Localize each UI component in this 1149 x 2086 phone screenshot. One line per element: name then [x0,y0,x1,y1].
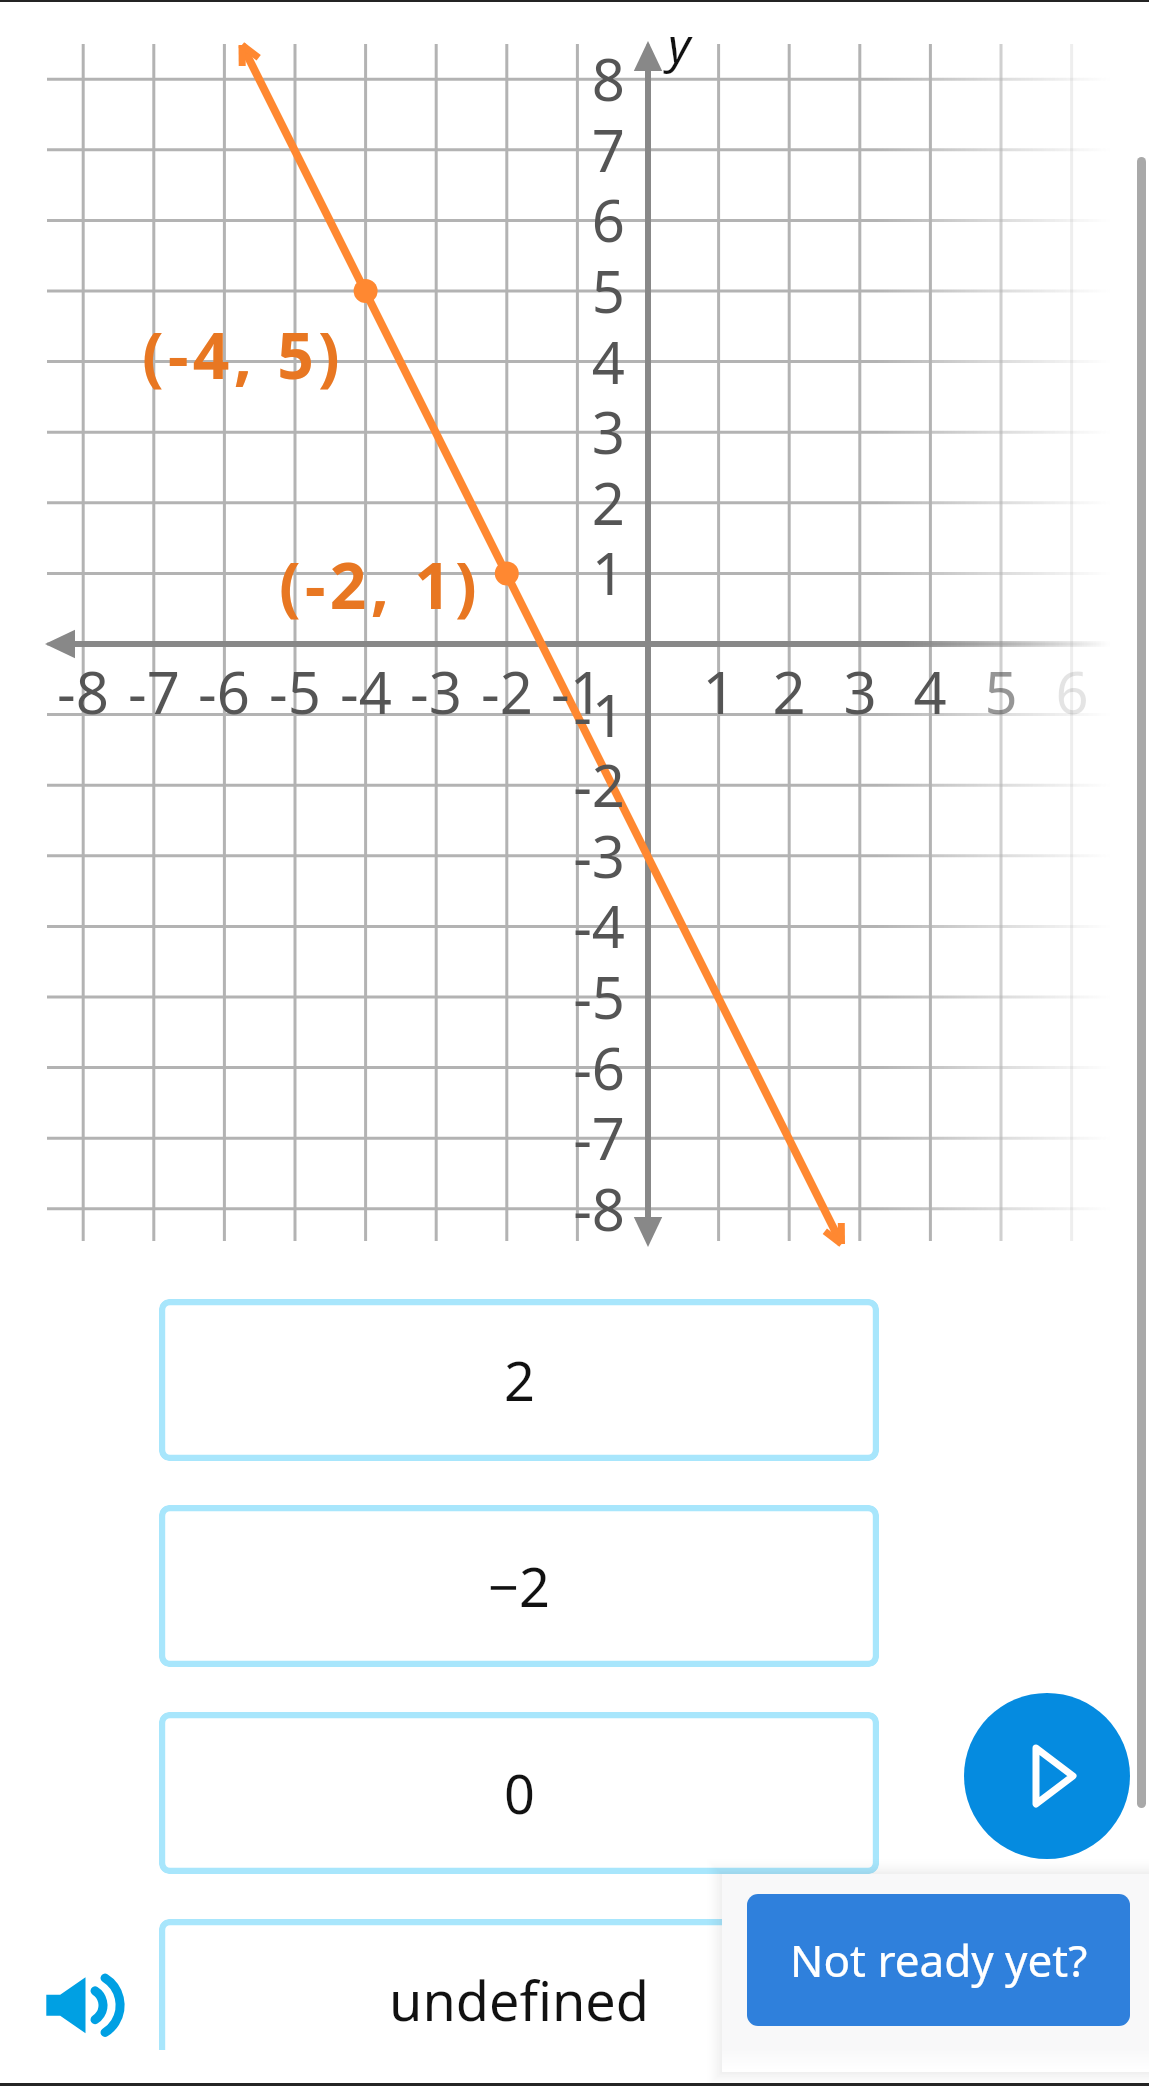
staticText: 2 [591,463,625,542]
staticText: -2 [481,652,533,731]
staticText: 1 [702,652,736,731]
staticText: 1 [591,533,625,612]
staticText: 5 [591,251,625,330]
staticText: 3 [843,652,877,731]
button[interactable]: Listen [30,1960,140,2052]
staticText: (-4, 5) [142,311,345,398]
staticText: -7 [573,1098,625,1177]
staticText: 6 [1055,652,1089,731]
staticText: undefined [389,1963,649,2037]
staticText: 0 [504,1756,535,1830]
button[interactable]: −2 [159,1505,879,1667]
staticText: 7 [591,110,625,189]
button[interactable]: 0 [159,1712,879,1874]
button[interactable]: 2 [159,1299,879,1461]
button[interactable]: Not ready yet? [747,1894,1130,2026]
staticText: 8 [591,39,625,118]
staticText: 2 [504,1343,535,1417]
staticText: -3 [573,816,625,895]
staticText: -8 [573,1169,625,1248]
staticText: -3 [410,652,462,731]
staticText: 4 [913,652,947,731]
staticText: (-2, 1) [279,541,482,628]
staticText: -6 [573,1028,625,1107]
staticText: 5 [984,652,1018,731]
staticText: -5 [573,957,625,1036]
staticText: −2 [488,1549,550,1623]
staticText: 2 [772,652,806,731]
staticText: 6 [591,180,625,259]
staticText: 3 [591,392,625,471]
staticText: -4 [573,886,625,965]
staticText: -7 [128,652,180,731]
staticText: -5 [269,652,321,731]
staticText: -2 [573,745,625,824]
staticText: y [668,12,691,77]
staticText: Not ready yet? [790,1930,1088,1990]
button[interactable]: undefined [159,1919,879,2050]
staticText: -4 [340,652,392,731]
staticText: 4 [591,322,625,401]
staticText: -6 [198,652,250,731]
staticText: -8 [57,652,109,731]
button[interactable]: Play [964,1693,1130,1859]
staticText: -1 [573,675,625,754]
staticText: -1 [551,652,603,731]
